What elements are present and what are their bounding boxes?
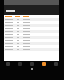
button[interactable] xyxy=(4,39,59,42)
button[interactable] xyxy=(4,48,59,51)
button[interactable] xyxy=(4,24,59,27)
button[interactable] xyxy=(4,27,59,30)
button[interactable] xyxy=(4,33,59,36)
button[interactable] xyxy=(4,21,59,24)
button[interactable]: App 4 xyxy=(54,62,58,66)
button[interactable] xyxy=(4,15,59,18)
button[interactable] xyxy=(4,45,59,48)
button[interactable]: App 1 xyxy=(18,62,22,66)
button[interactable] xyxy=(4,5,59,15)
button[interactable]: App 0 xyxy=(6,62,10,66)
button[interactable] xyxy=(4,42,59,45)
button[interactable] xyxy=(4,36,59,39)
button[interactable]: App 3 xyxy=(42,62,46,66)
button[interactable] xyxy=(4,18,59,21)
button[interactable]: App 2 xyxy=(30,62,34,66)
button[interactable] xyxy=(4,30,59,33)
